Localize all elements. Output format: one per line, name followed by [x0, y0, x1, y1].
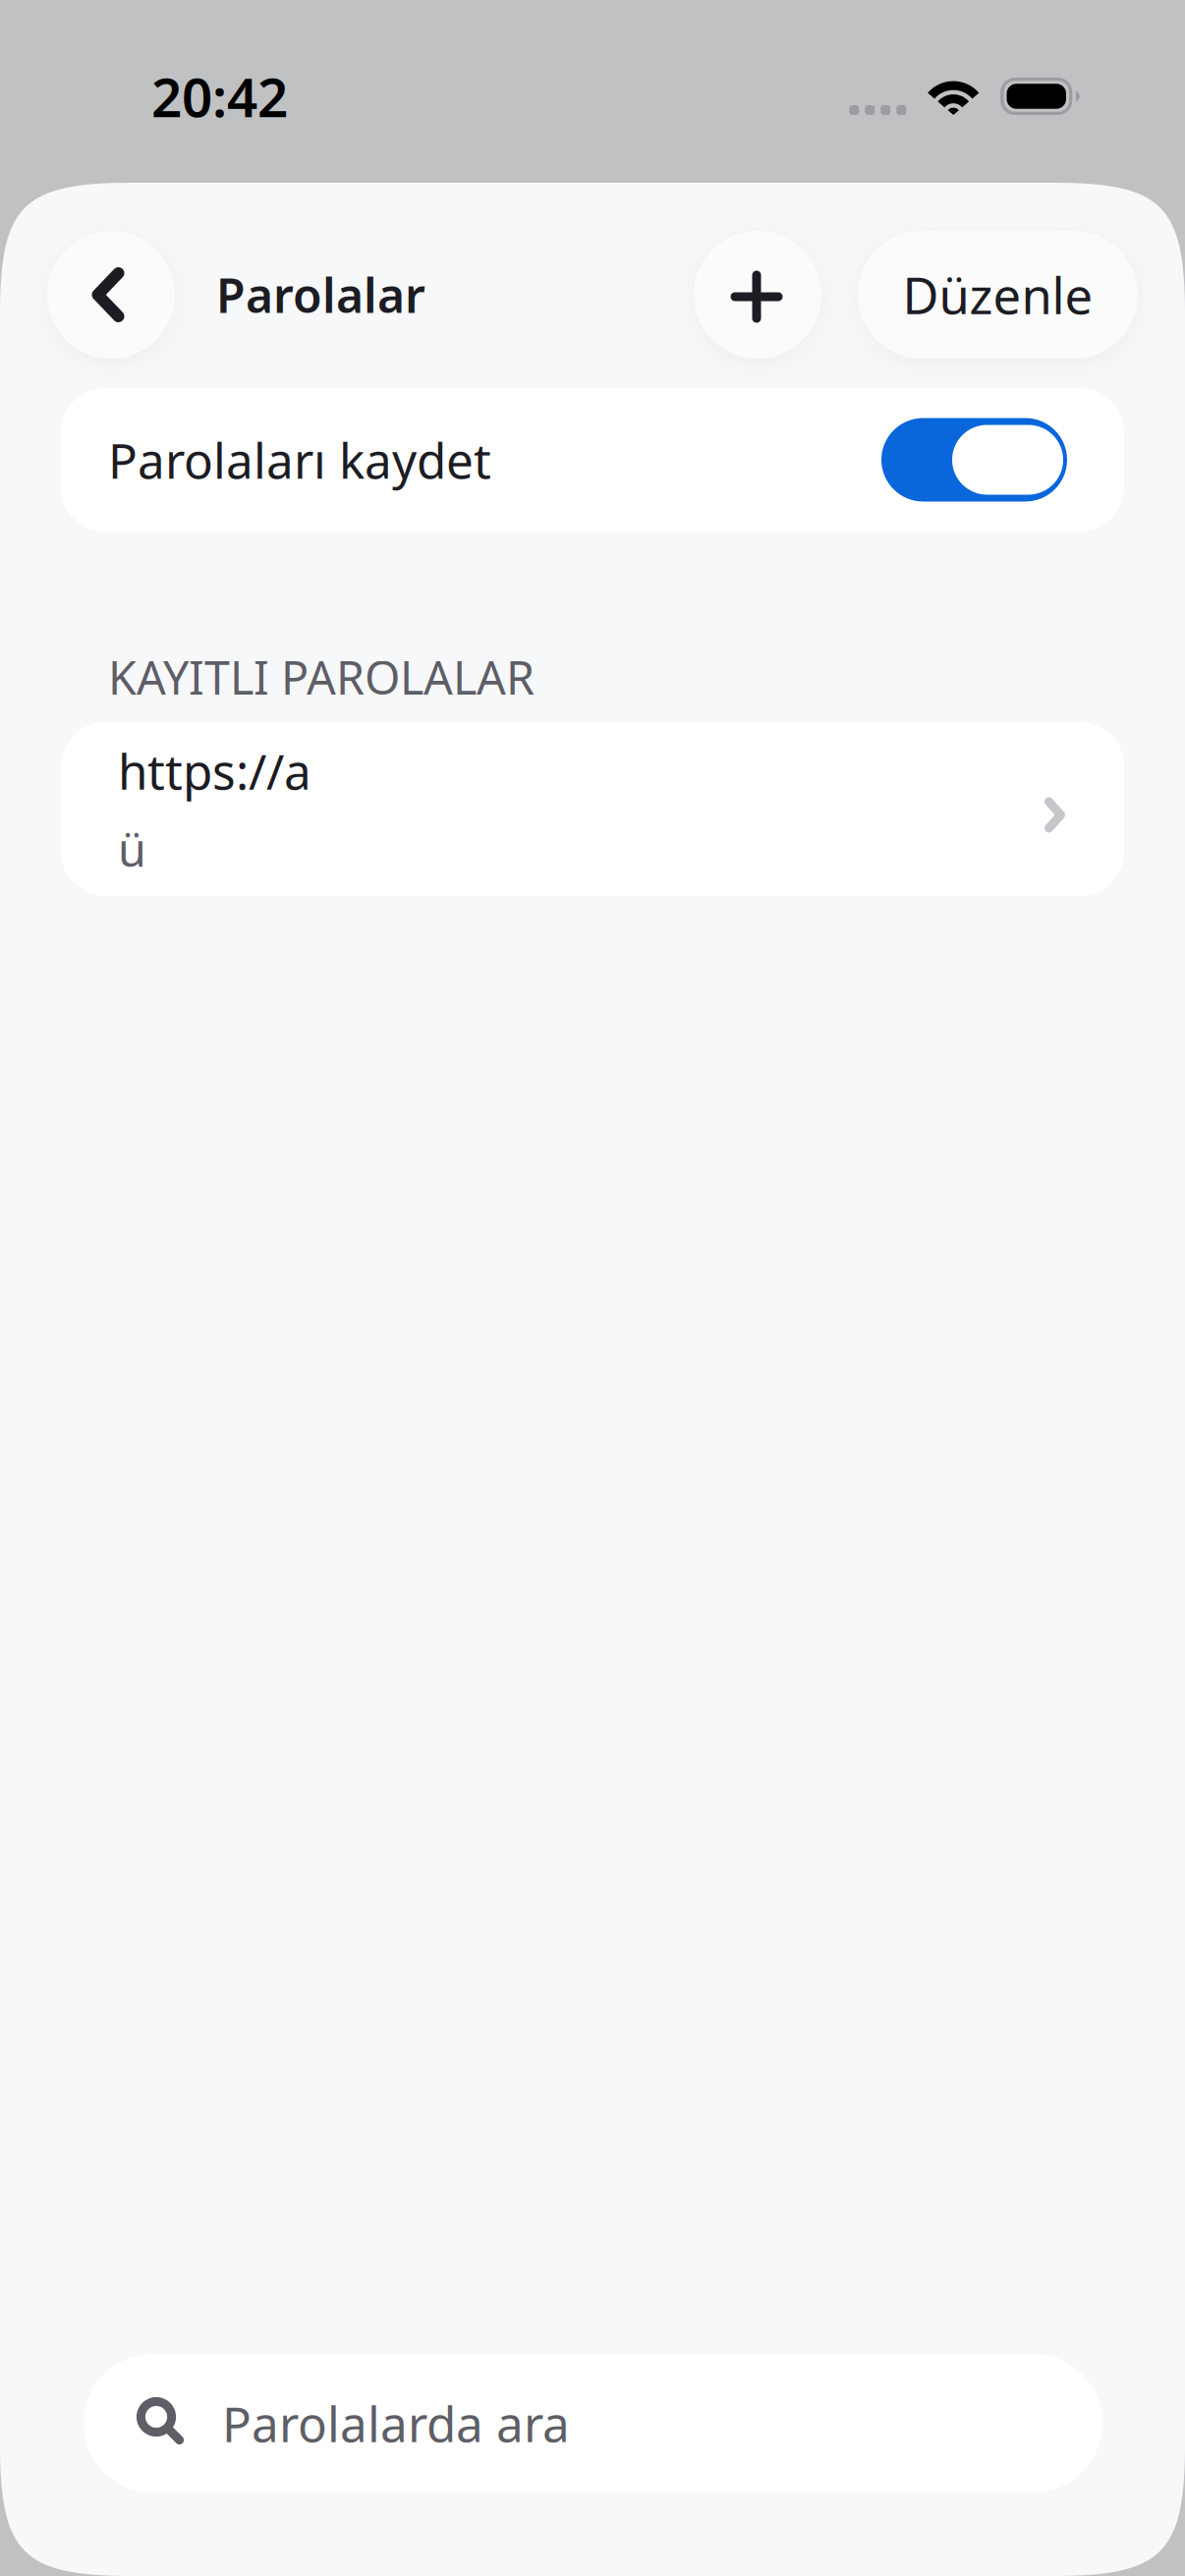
staticText: Parolalar	[216, 263, 425, 326]
button[interactable]: Parolalarda ara	[61, 2354, 1124, 2492]
button[interactable]: Düzenle	[858, 231, 1138, 359]
staticText: Parolalarda ara	[222, 2391, 570, 2455]
staticText: 20:42	[151, 61, 288, 132]
button[interactable]: Ekle	[694, 231, 821, 359]
button[interactable]: https://a	[61, 722, 1124, 896]
button[interactable]: Parolaları kaydet	[61, 388, 1124, 532]
button[interactable]: Geri	[47, 231, 175, 359]
staticText: KAYITLI PAROLALAR	[108, 646, 535, 707]
staticText: https://a	[118, 739, 311, 803]
staticText: Parolaları kaydet	[108, 428, 491, 492]
staticText: ü	[118, 819, 146, 879]
staticText: Düzenle	[903, 262, 1093, 328]
